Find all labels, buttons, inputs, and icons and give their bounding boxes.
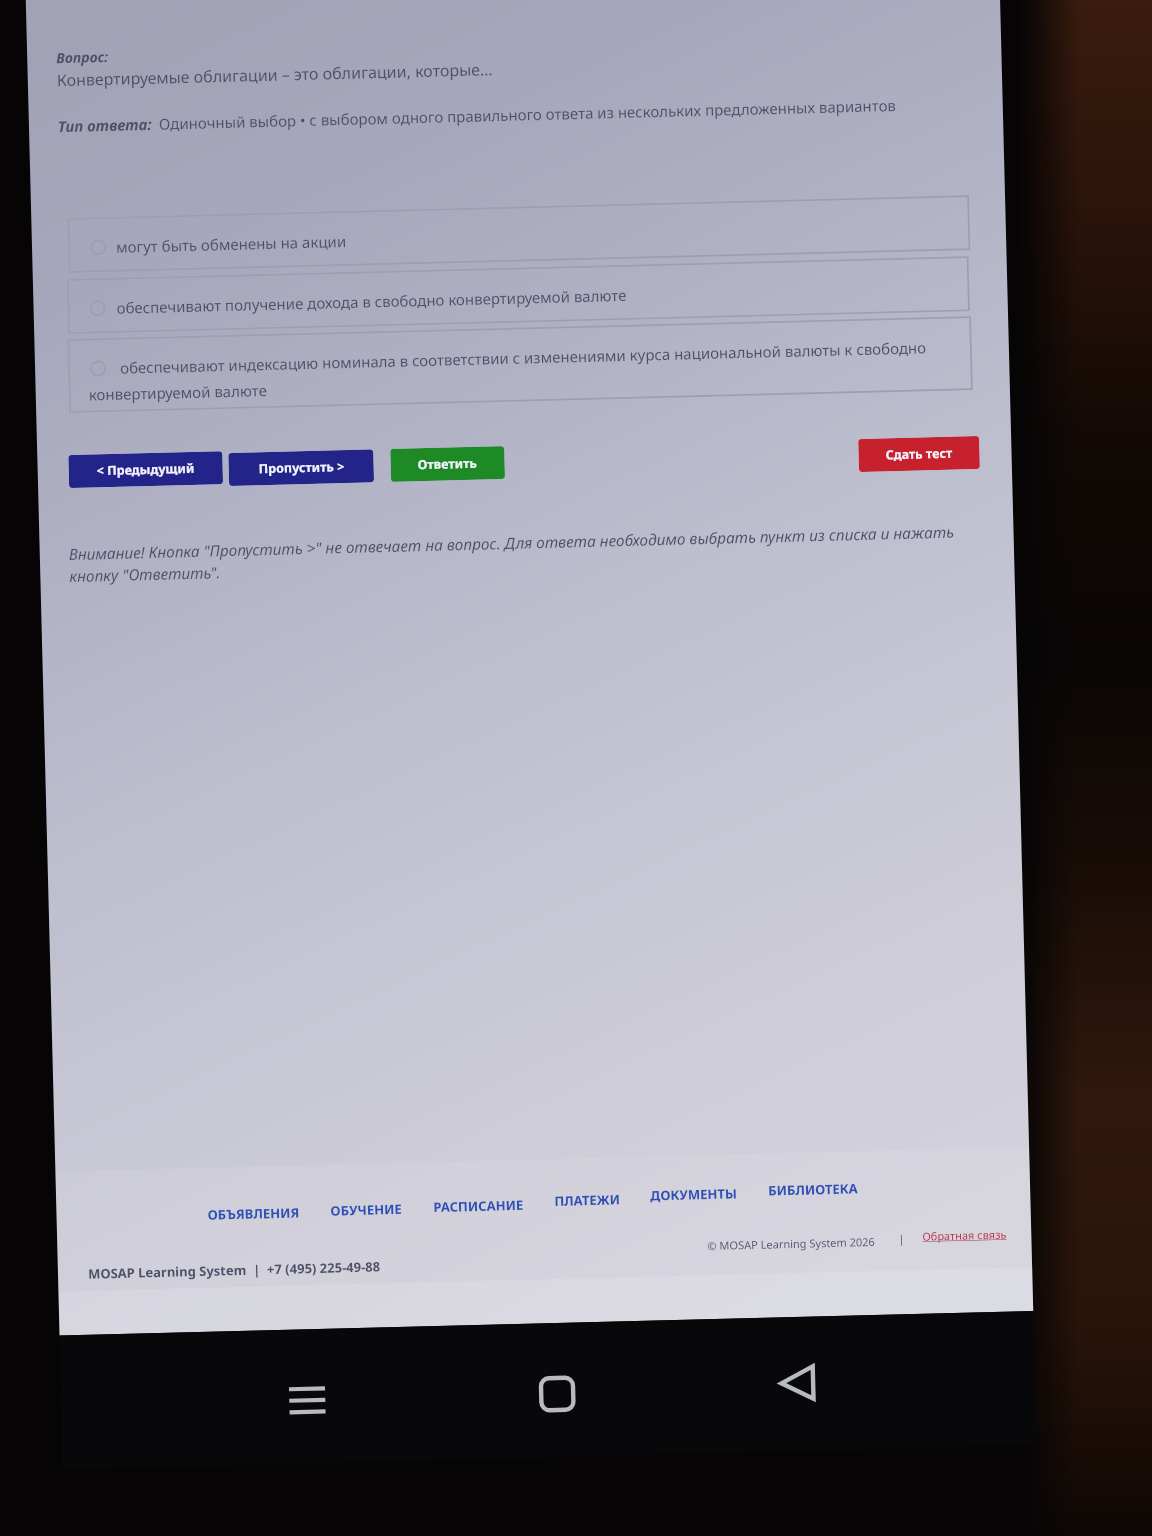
staticText: Обратная связь [922, 1227, 1007, 1244]
staticText: © MOSAP Learning System 2026 [707, 1234, 876, 1253]
staticText: Ответить [417, 455, 478, 473]
staticText: < Предыдущий [96, 460, 195, 479]
button[interactable]: Обратная связь [922, 1227, 1007, 1244]
button[interactable]: Пропустить > [228, 449, 374, 486]
staticText: Тип ответа: [58, 114, 152, 136]
staticText: Сдать тест [885, 445, 953, 463]
button[interactable]: обеспечивают индексацию номинала в соотв… [68, 317, 972, 412]
button[interactable]: БИБЛИОТЕКА [768, 1179, 858, 1200]
button[interactable]: Back [769, 1354, 827, 1412]
staticText: могут быть обменены на акции [116, 231, 347, 257]
staticText: ОБУЧЕНИЕ [330, 1200, 403, 1220]
staticText: Конвертируемые облигации – это облигации… [56, 58, 493, 91]
staticText: Одиночный выбор • с выбором одного прави… [159, 93, 959, 134]
staticText: MOSAP Learning System | +7 (495) 225-49-… [88, 1257, 381, 1283]
button[interactable]: Сдать тест [858, 436, 980, 472]
staticText: Внимание! Кнопка "Пропустить >" не отвеч… [68, 521, 989, 587]
button[interactable]: Ответить [390, 446, 505, 482]
staticText: Вопрос: [56, 47, 108, 67]
staticText: Пропустить > [258, 458, 345, 477]
staticText: обеспечивают получение дохода в свободно… [116, 285, 627, 318]
button[interactable]: РАСПИСАНИЕ [433, 1196, 524, 1216]
button[interactable]: обеспечивают получение дохода в свободно… [68, 257, 969, 333]
staticText: конвертируемой валюте [88, 380, 268, 404]
button[interactable]: Home [528, 1365, 586, 1423]
button[interactable]: ПЛАТЕЖИ [554, 1190, 620, 1210]
button[interactable]: ДОКУМЕНТЫ [650, 1184, 737, 1205]
button[interactable]: могут быть обменены на акции [68, 196, 969, 272]
staticText: БИБЛИОТЕКА [768, 1179, 858, 1200]
staticText: обеспечивают индексацию номинала в соотв… [120, 337, 927, 378]
button[interactable]: < Предыдущий [68, 451, 223, 488]
button[interactable]: ОБУЧЕНИЕ [330, 1200, 403, 1220]
button[interactable]: Recents [279, 1372, 336, 1429]
staticText: | [898, 1231, 906, 1246]
staticText: ПЛАТЕЖИ [554, 1190, 620, 1210]
staticText: ДОКУМЕНТЫ [650, 1184, 737, 1205]
staticText: РАСПИСАНИЕ [433, 1196, 524, 1216]
button[interactable]: ОБЪЯВЛЕНИЯ [207, 1203, 300, 1224]
staticText: ОБЪЯВЛЕНИЯ [207, 1203, 300, 1224]
